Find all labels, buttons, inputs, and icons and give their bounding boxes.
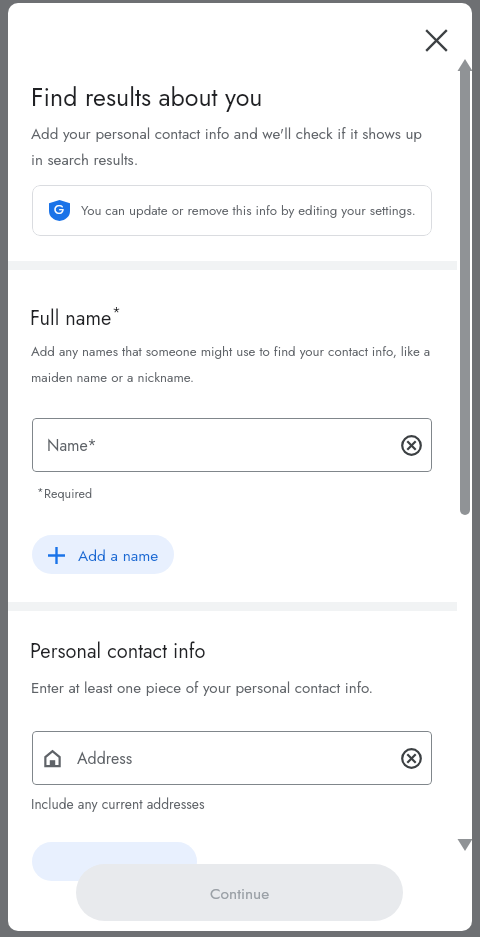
button[interactable]: Continue	[76, 864, 403, 921]
staticText: Add a name	[78, 544, 159, 566]
staticText: You can update or remove this info by ed…	[81, 201, 416, 220]
staticText: Address	[77, 747, 133, 770]
button[interactable]	[32, 842, 197, 881]
button[interactable]: Address	[32, 731, 432, 785]
button[interactable]: Clear	[395, 429, 427, 461]
staticText: Continue	[210, 882, 270, 904]
staticText: G	[54, 200, 65, 219]
staticText: Required	[44, 485, 93, 503]
staticText: Full name	[30, 304, 112, 333]
button[interactable]: G	[32, 185, 432, 236]
staticText: Include any current addresses	[31, 794, 205, 814]
staticText: Find results about you	[31, 79, 263, 115]
button[interactable]: Clear	[395, 742, 427, 774]
staticText: Enter at least one piece of your persona…	[31, 677, 374, 699]
staticText: *	[112, 301, 121, 323]
staticText: Add your personal contact info and we'll…	[31, 123, 461, 171]
staticText: Add any names that someone might use to …	[31, 342, 461, 387]
staticText: *	[37, 483, 44, 499]
button[interactable]: Close	[416, 20, 456, 60]
staticText: Personal contact info	[30, 637, 206, 666]
button[interactable]: Add a name	[32, 535, 174, 574]
button[interactable]: Name*	[32, 418, 432, 472]
staticText: Name*	[47, 434, 97, 457]
